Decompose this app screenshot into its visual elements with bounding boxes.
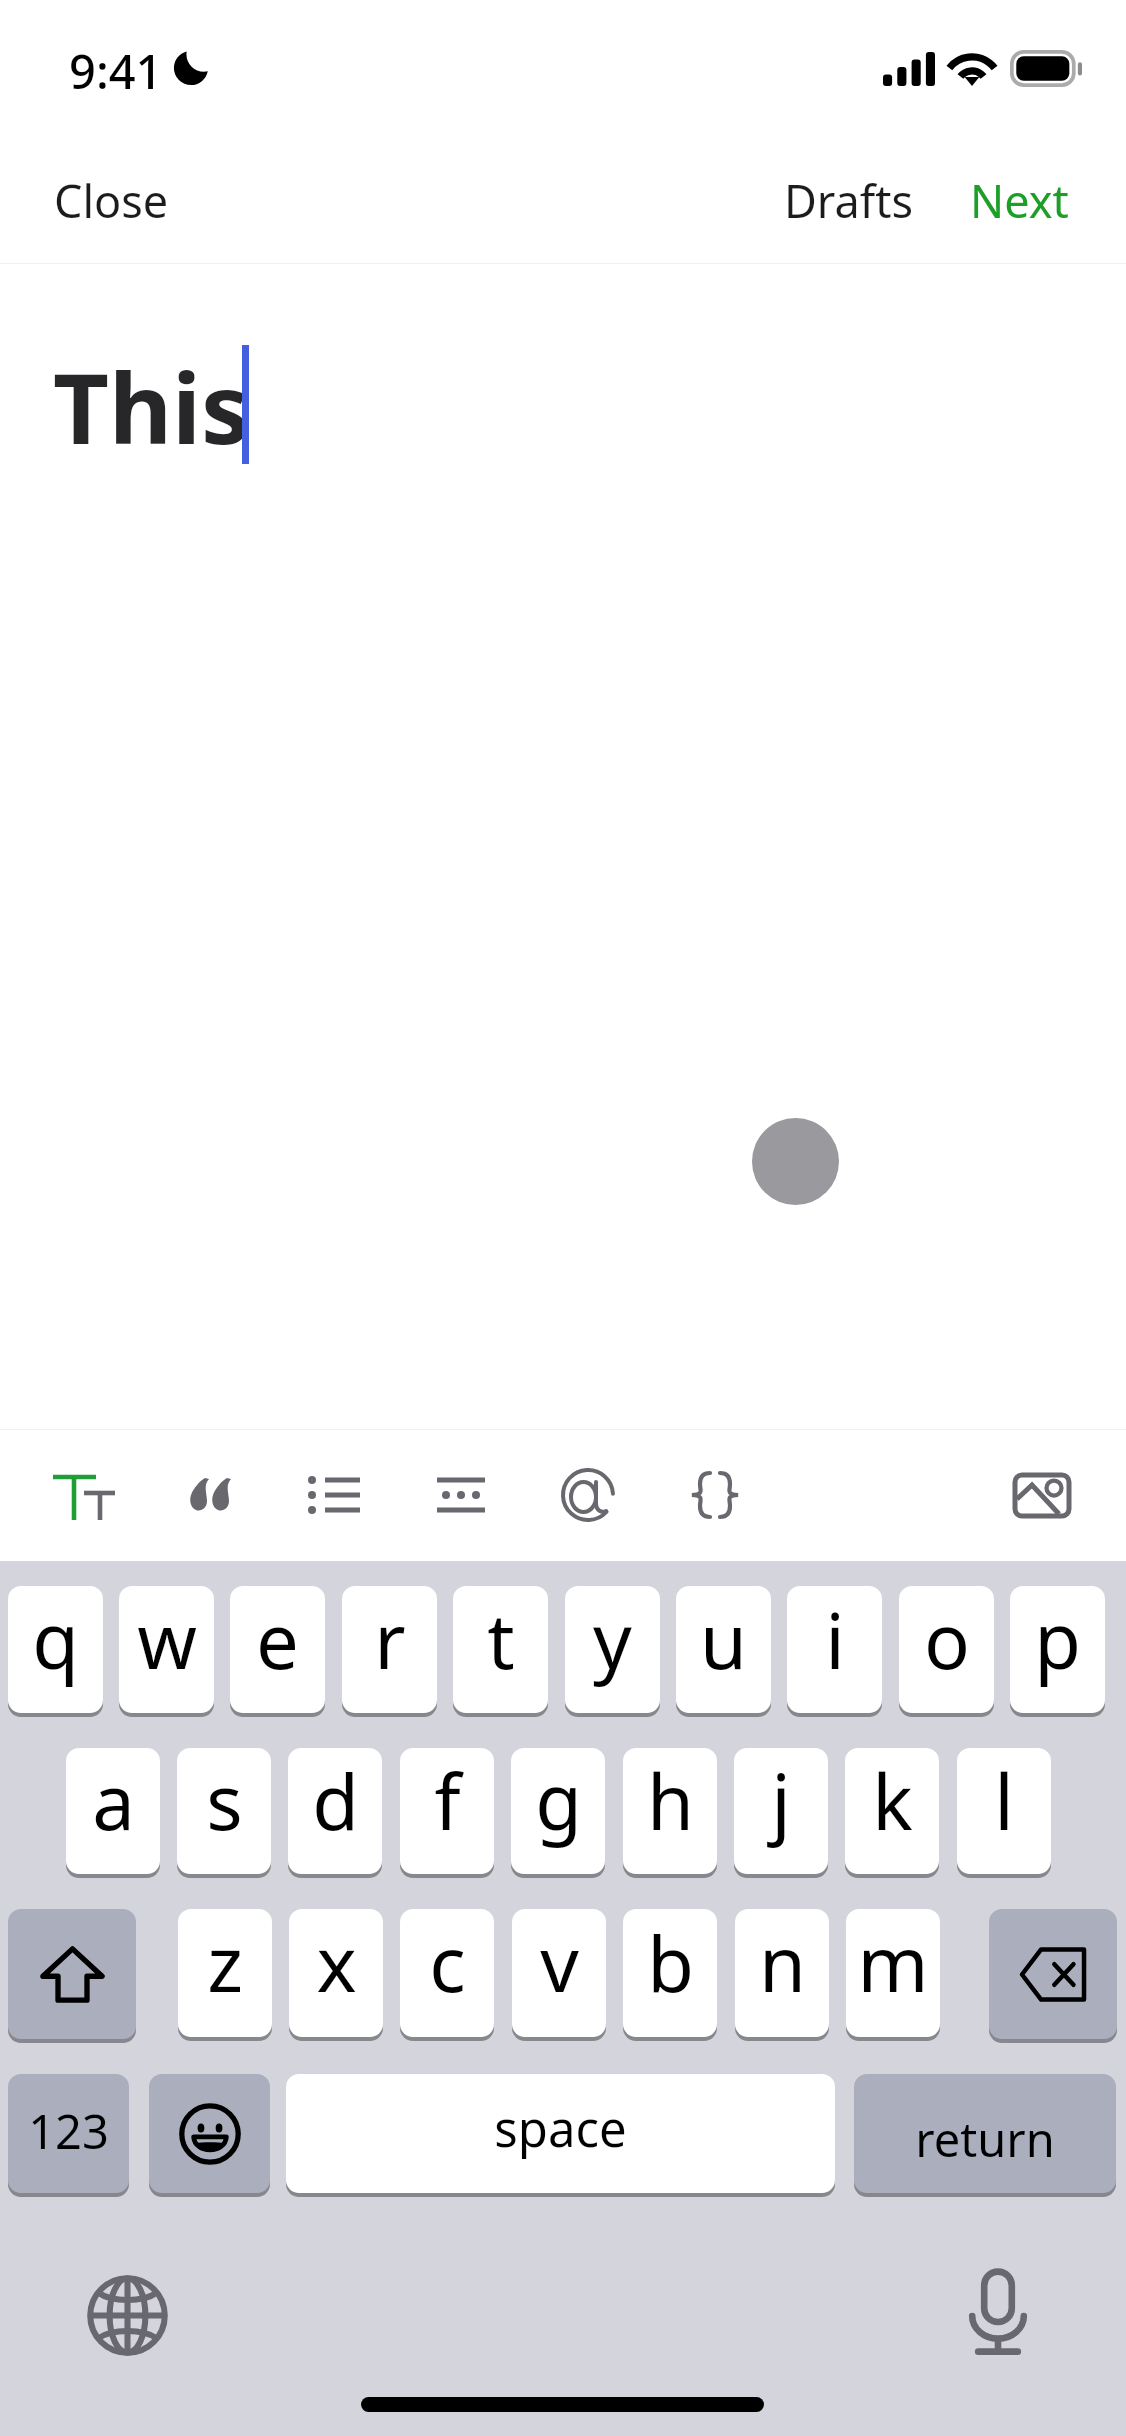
button[interactable]: Drafts: [760, 146, 938, 255]
button[interactable]: u: [676, 1586, 771, 1713]
button[interactable]: Text style: [28, 1439, 140, 1551]
staticText: x: [316, 1911, 357, 2015]
button[interactable]: Emoji: [149, 2074, 270, 2193]
staticText: y: [593, 1588, 632, 1692]
staticText: q: [32, 1588, 79, 1692]
staticText: b: [647, 1911, 694, 2015]
button[interactable]: 123: [8, 2074, 129, 2193]
staticText: s: [206, 1749, 243, 1853]
staticText: e: [256, 1588, 299, 1692]
button[interactable]: Next: [946, 146, 1093, 255]
button[interactable]: Backspace: [989, 1909, 1117, 2039]
staticText: return: [915, 2107, 1055, 2171]
button[interactable]: o: [899, 1586, 994, 1713]
staticText: o: [924, 1588, 970, 1692]
button[interactable]: Bulleted list: [286, 1439, 398, 1551]
staticText: j: [771, 1749, 791, 1853]
staticText: i: [825, 1588, 845, 1692]
staticText: c: [429, 1911, 466, 2015]
button[interactable]: n: [735, 1909, 829, 2037]
button[interactable]: Quote: [154, 1439, 266, 1551]
staticText: h: [647, 1749, 694, 1853]
staticText: m: [857, 1911, 929, 2015]
button[interactable]: x: [289, 1909, 383, 2037]
staticText: k: [872, 1749, 913, 1853]
button[interactable]: p: [1010, 1586, 1105, 1713]
button[interactable]: Dictate: [968, 2269, 1028, 2356]
button[interactable]: t: [453, 1586, 548, 1713]
button[interactable]: Close: [20, 146, 203, 255]
staticText: l: [994, 1749, 1014, 1853]
button[interactable]: w: [119, 1586, 214, 1713]
staticText: Drafts: [784, 170, 914, 231]
button[interactable]: Code block: [659, 1439, 771, 1551]
button[interactable]: j: [734, 1748, 828, 1874]
staticText: f: [434, 1749, 461, 1853]
staticText: d: [312, 1749, 359, 1853]
button[interactable]: k: [845, 1748, 939, 1874]
staticText: Next: [970, 170, 1069, 231]
button[interactable]: h: [623, 1748, 717, 1874]
button[interactable]: q: [8, 1586, 103, 1713]
staticText: v: [540, 1911, 579, 2015]
staticText: p: [1034, 1588, 1081, 1692]
button[interactable]: a: [66, 1748, 160, 1874]
staticText: g: [535, 1749, 582, 1853]
staticText: z: [207, 1911, 243, 2015]
button[interactable]: c: [400, 1909, 494, 2037]
staticText: a: [92, 1749, 135, 1853]
staticText: 123: [28, 2099, 109, 2163]
button[interactable]: b: [623, 1909, 717, 2037]
button[interactable]: y: [565, 1586, 660, 1713]
staticText: space: [494, 2095, 627, 2162]
button[interactable]: l: [957, 1748, 1051, 1874]
button[interactable]: Mention: [532, 1439, 644, 1551]
button[interactable]: Shift: [8, 1909, 136, 2039]
button[interactable]: s: [177, 1748, 271, 1874]
button[interactable]: m: [846, 1909, 940, 2037]
button[interactable]: v: [512, 1909, 606, 2037]
button[interactable]: Numbered list: [405, 1439, 517, 1551]
staticText: u: [700, 1588, 747, 1692]
staticText: Close: [54, 170, 169, 231]
staticText: This: [53, 340, 250, 472]
button[interactable]: r: [342, 1586, 437, 1713]
button[interactable]: e: [230, 1586, 325, 1713]
button[interactable]: space: [286, 2074, 835, 2193]
staticText: w: [137, 1588, 197, 1692]
button[interactable]: d: [288, 1748, 382, 1874]
staticText: t: [487, 1588, 515, 1692]
staticText: r: [374, 1588, 406, 1692]
button[interactable]: return: [854, 2074, 1116, 2193]
button[interactable]: f: [400, 1748, 494, 1874]
staticText: 9:41: [69, 39, 163, 103]
button[interactable]: i: [787, 1586, 882, 1713]
button[interactable]: Insert image: [986, 1439, 1098, 1551]
button[interactable]: z: [178, 1909, 272, 2037]
button[interactable]: g: [511, 1748, 605, 1874]
button[interactable]: Change keyboard: [87, 2275, 168, 2356]
staticText: n: [759, 1911, 806, 2015]
